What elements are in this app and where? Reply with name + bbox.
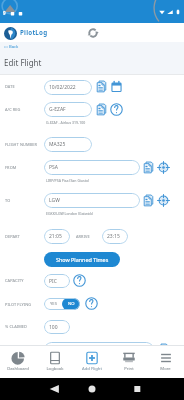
staticText: 21:05 xyxy=(49,233,62,240)
staticText: PILOT FLYING xyxy=(5,302,32,307)
staticText: PilotLog xyxy=(20,28,48,36)
button[interactable]: Show Planned Times xyxy=(44,252,120,267)
button[interactable]: 21:05 xyxy=(44,229,70,244)
staticText: EGKK/LGW London (Gatwick) xyxy=(46,211,94,216)
button[interactable]: Locate xyxy=(157,194,170,207)
staticText: LIRP/PSA Pisa (San Giusto) xyxy=(46,178,90,183)
button[interactable]: Notes xyxy=(95,80,108,93)
staticText: DATE xyxy=(5,84,15,89)
button[interactable]: Sync xyxy=(87,27,99,39)
button[interactable]: Pick date xyxy=(110,80,123,93)
button[interactable]: Locate xyxy=(157,161,170,174)
staticText: NO xyxy=(68,301,75,307)
staticText: ARRIVE xyxy=(76,234,90,239)
staticText: DEPART xyxy=(5,234,20,239)
button[interactable]: LGW xyxy=(44,193,140,208)
button[interactable]: 100 xyxy=(44,320,70,334)
button[interactable]: PSA xyxy=(44,160,140,175)
staticText: ‹‹‹ Back xyxy=(4,44,19,50)
staticText: 23:15 xyxy=(107,233,120,240)
staticText: LGW xyxy=(49,197,60,204)
staticText: FLIGHT NUMBER xyxy=(5,142,38,147)
staticText: 100 xyxy=(49,324,58,331)
staticText: 9 xyxy=(3,10,6,16)
staticText: YES xyxy=(50,301,57,307)
button[interactable]: Print xyxy=(110,345,147,378)
button[interactable]: Notes xyxy=(157,343,170,356)
staticText: More xyxy=(160,366,171,372)
button[interactable] xyxy=(44,342,154,357)
button[interactable]: Logbook xyxy=(36,345,73,378)
staticText: MA325 xyxy=(49,141,66,148)
staticText: Print xyxy=(124,366,134,372)
staticText: Dashboard xyxy=(7,366,29,372)
staticText: Edit Flight xyxy=(4,57,42,68)
staticText: G-EZAF - Airbus 319-100 xyxy=(46,120,86,125)
button[interactable]: Notes xyxy=(142,161,155,174)
button[interactable]: 10/02/2022 xyxy=(44,80,92,95)
staticText: TO xyxy=(5,198,11,203)
button[interactable]: PIC xyxy=(44,274,70,288)
button[interactable]: Help xyxy=(85,297,98,310)
staticText: Show Planned Times xyxy=(56,256,109,263)
button[interactable]: Help xyxy=(73,274,86,287)
button[interactable]: Help xyxy=(110,103,123,116)
button[interactable]: NO xyxy=(62,298,80,310)
staticText: G-EZAF xyxy=(49,106,66,113)
button[interactable]: YES xyxy=(44,298,62,310)
button[interactable]: Add Flight xyxy=(73,345,110,378)
button[interactable]: MA325 xyxy=(44,137,92,152)
button[interactable]: 23:15 xyxy=(102,229,128,244)
staticText: 10/02/2022 xyxy=(49,84,76,91)
button[interactable]: ‹‹‹ Back xyxy=(4,44,19,50)
staticText: PSA xyxy=(49,164,58,171)
staticText: FROM xyxy=(5,165,17,170)
staticText: CAPACITY xyxy=(5,278,24,283)
staticText: A/C REG xyxy=(5,107,21,112)
button[interactable]: Notes xyxy=(142,194,155,207)
button[interactable]: Dashboard xyxy=(0,345,36,378)
staticText: PIC xyxy=(49,278,57,285)
button[interactable]: More xyxy=(147,345,184,378)
staticText: % CLAIMED xyxy=(5,324,27,329)
button[interactable]: G-EZAF xyxy=(44,102,92,117)
button[interactable]: Notes xyxy=(95,103,108,116)
staticText: Add Flight xyxy=(82,366,102,372)
staticText: Logbook xyxy=(46,366,64,372)
